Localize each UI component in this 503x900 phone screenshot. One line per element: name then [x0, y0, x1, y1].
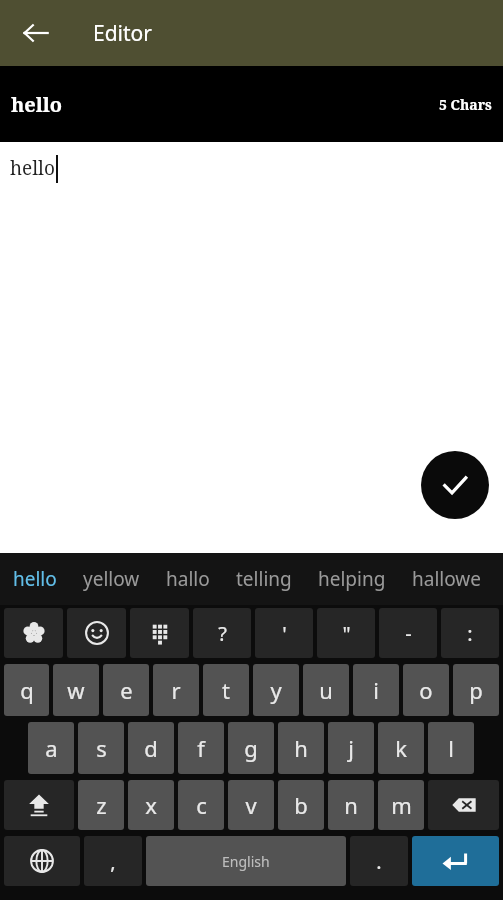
button[interactable]: t: [203, 664, 249, 716]
staticText: 5 Chars: [439, 95, 492, 114]
button[interactable]: n: [328, 780, 374, 830]
button[interactable]: k: [378, 722, 424, 774]
staticText: r: [171, 675, 181, 705]
button[interactable]: s: [78, 722, 124, 774]
button[interactable]: yellow: [83, 566, 140, 592]
button[interactable]: hallo: [166, 566, 210, 592]
staticText: c: [196, 790, 207, 820]
staticText: hello: [11, 91, 63, 118]
button[interactable]: m: [378, 780, 424, 830]
staticText: a: [45, 733, 58, 763]
button[interactable]: .: [350, 836, 408, 886]
button[interactable]: Key: [4, 836, 80, 886]
staticText: q: [20, 675, 34, 705]
button[interactable]: h: [278, 722, 324, 774]
button[interactable]: helping: [318, 566, 386, 592]
button[interactable]: l: [428, 722, 474, 774]
staticText: yellow: [83, 566, 140, 592]
button[interactable]: Key: [428, 780, 499, 830]
staticText: hallowe: [412, 566, 481, 592]
button[interactable]: ': [255, 608, 313, 658]
button[interactable]: d: [128, 722, 174, 774]
button[interactable]: hello: [13, 566, 57, 592]
staticText: .: [376, 848, 382, 875]
button[interactable]: j: [328, 722, 374, 774]
staticText: u: [319, 675, 333, 705]
button[interactable]: Key: [130, 608, 189, 658]
button[interactable]: o: [403, 664, 449, 716]
staticText: -: [405, 620, 412, 647]
staticText: f: [197, 733, 205, 763]
staticText: w: [67, 675, 85, 705]
button[interactable]: v: [228, 780, 274, 830]
button[interactable]: English: [146, 836, 346, 886]
button[interactable]: hallowe: [412, 566, 481, 592]
staticText: :: [467, 620, 473, 647]
button[interactable]: i: [353, 664, 399, 716]
button[interactable]: c: [178, 780, 224, 830]
button[interactable]: Key: [4, 608, 63, 658]
button[interactable]: :: [441, 608, 499, 658]
button[interactable]: Key: [4, 780, 74, 830]
staticText: x: [145, 790, 157, 820]
button[interactable]: ": [317, 608, 375, 658]
button[interactable]: telling: [236, 566, 292, 592]
staticText: o: [419, 675, 433, 705]
staticText: n: [344, 790, 358, 820]
staticText: h: [294, 733, 308, 763]
staticText: Editor: [93, 19, 152, 48]
button[interactable]: hello: [0, 66, 503, 142]
staticText: k: [395, 733, 407, 763]
staticText: b: [294, 790, 308, 820]
staticText: ': [282, 620, 287, 647]
staticText: hallo: [166, 566, 210, 592]
staticText: p: [469, 675, 483, 705]
button[interactable]: x: [128, 780, 174, 830]
staticText: helping: [318, 566, 386, 592]
button[interactable]: a: [28, 722, 74, 774]
button[interactable]: -: [379, 608, 437, 658]
staticText: z: [96, 790, 107, 820]
button[interactable]: ?: [193, 608, 251, 658]
button[interactable]: g: [228, 722, 274, 774]
button[interactable]: Back: [12, 9, 60, 57]
button[interactable]: r: [153, 664, 199, 716]
button[interactable]: b: [278, 780, 324, 830]
button[interactable]: Save: [421, 451, 489, 519]
button[interactable]: u: [303, 664, 349, 716]
staticText: telling: [236, 566, 292, 592]
staticText: t: [222, 675, 230, 705]
staticText: ,: [110, 848, 116, 875]
staticText: d: [144, 733, 158, 763]
button[interactable]: z: [78, 780, 124, 830]
button[interactable]: p: [453, 664, 499, 716]
staticText: i: [373, 675, 379, 705]
staticText: hello: [10, 155, 55, 181]
staticText: g: [244, 733, 258, 763]
staticText: English: [222, 852, 270, 871]
staticText: ?: [218, 620, 227, 647]
button[interactable]: y: [253, 664, 299, 716]
button[interactable]: q: [4, 664, 49, 716]
button[interactable]: w: [53, 664, 99, 716]
button[interactable]: ,: [84, 836, 142, 886]
staticText: y: [270, 675, 282, 705]
button[interactable]: e: [103, 664, 149, 716]
staticText: l: [448, 733, 454, 763]
staticText: m: [391, 790, 412, 820]
staticText: v: [245, 790, 257, 820]
button[interactable]: Key: [67, 608, 126, 658]
staticText: hello: [13, 566, 57, 592]
staticText: ": [342, 620, 351, 647]
staticText: e: [120, 675, 133, 705]
button[interactable]: f: [178, 722, 224, 774]
staticText: s: [96, 733, 107, 763]
button[interactable]: Enter: [412, 836, 499, 886]
staticText: j: [348, 733, 354, 763]
